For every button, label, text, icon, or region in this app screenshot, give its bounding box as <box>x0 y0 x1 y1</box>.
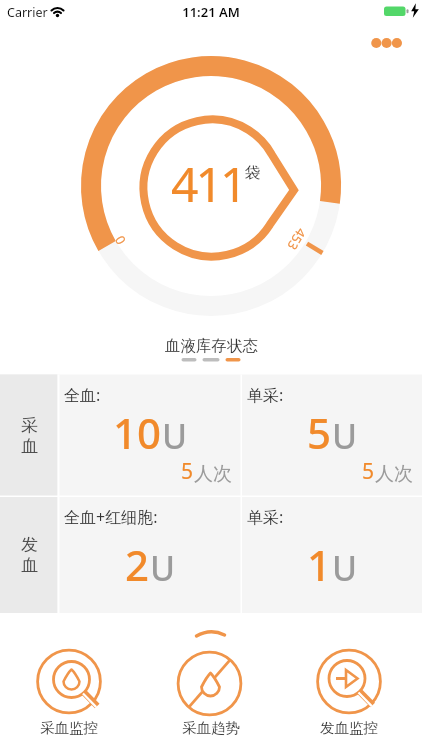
button[interactable]: 采血趋势 <box>165 646 257 746</box>
staticText: 0 <box>110 232 130 248</box>
staticText: 全血+红细胞: <box>64 506 158 528</box>
staticText: 发 <box>21 534 38 555</box>
staticText: 单采: <box>247 506 284 528</box>
staticText: 袋 <box>245 163 261 183</box>
staticText: Carrier <box>7 4 48 21</box>
staticText: 采血趋势 <box>182 719 240 737</box>
staticText: 采血监控 <box>40 719 98 737</box>
button[interactable] <box>366 32 406 54</box>
button[interactable]: 采血监控 <box>23 646 115 746</box>
staticText: 发血监控 <box>320 719 378 737</box>
staticText: 人次 <box>194 462 232 486</box>
button[interactable]: 发血监控 <box>303 646 395 746</box>
staticText: 2 <box>125 536 150 588</box>
staticText: 采 <box>21 415 38 436</box>
staticText: 全血: <box>64 384 101 406</box>
staticText: 453 <box>283 225 310 254</box>
staticText: 10 <box>113 404 162 456</box>
staticText: 1 <box>307 536 332 588</box>
staticText: 5 <box>181 457 194 483</box>
staticText: 血液库存状态 <box>165 336 258 356</box>
staticText: 人次 <box>375 462 413 486</box>
staticText: 5 <box>307 404 332 456</box>
staticText: 血 <box>21 436 38 457</box>
staticText: 血 <box>21 555 38 576</box>
staticText: 411 <box>171 151 245 213</box>
staticText: U <box>162 413 188 459</box>
staticText: U <box>332 413 358 459</box>
staticText: 11:21 AM <box>182 3 240 21</box>
staticText: U <box>150 545 176 591</box>
staticText: 单采: <box>247 384 284 406</box>
staticText: 5 <box>362 457 375 483</box>
staticText: U <box>332 545 358 591</box>
